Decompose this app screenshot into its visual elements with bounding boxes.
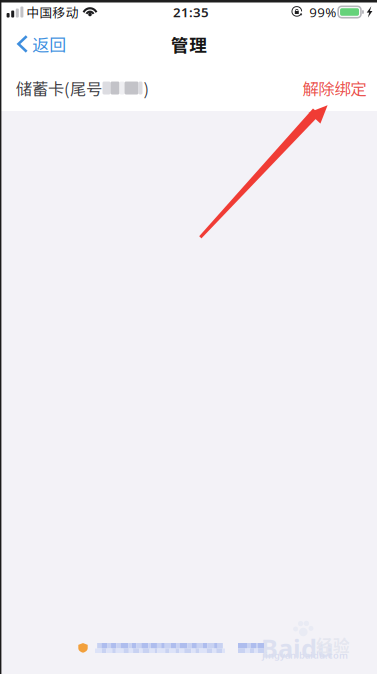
- staticText: 经验: [316, 633, 350, 657]
- staticText: 21:35: [173, 3, 209, 21]
- button[interactable]: 解除绑定: [296, 66, 372, 110]
- staticText: ): [143, 76, 149, 100]
- staticText: 储蓄卡(尾号: [16, 76, 102, 100]
- staticText: 99%: [309, 3, 336, 21]
- staticText: 返回: [32, 32, 66, 56]
- staticText: 解除绑定: [302, 76, 366, 100]
- staticText: Baidu: [261, 631, 333, 665]
- staticText: 管理: [171, 31, 207, 57]
- button[interactable]: 返回: [0, 23, 78, 65]
- staticText: jingyan.baidu.com: [262, 649, 348, 661]
- staticText: 中国移动: [26, 3, 78, 21]
